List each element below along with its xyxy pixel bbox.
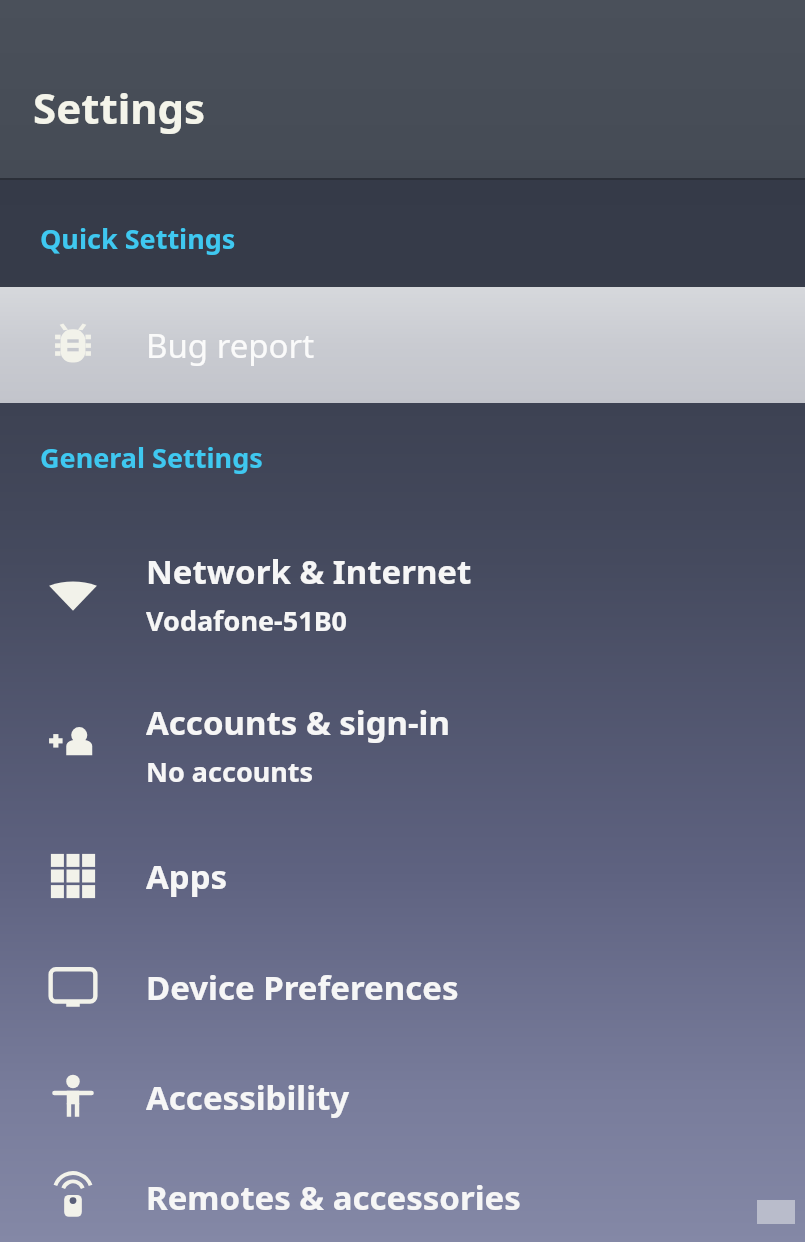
staticText: Accounts & sign-in [146, 700, 450, 745]
staticText: Settings [33, 79, 206, 136]
button[interactable]: Accessibility [0, 1042, 805, 1152]
staticText: No accounts [146, 753, 314, 790]
staticText: Quick Settings [40, 220, 236, 257]
button[interactable]: Accounts & sign-in [0, 670, 805, 820]
staticText: Vodafone-51B0 [146, 602, 348, 639]
staticText: Remotes & accessories [146, 1175, 521, 1220]
button[interactable]: Bug report [0, 287, 805, 403]
button[interactable]: Device Preferences [0, 932, 805, 1042]
staticText: Accessibility [146, 1075, 350, 1120]
staticText: Network & Internet [146, 549, 472, 594]
staticText: Bug report [146, 323, 315, 368]
staticText: Device Preferences [146, 965, 459, 1010]
staticText: Apps [146, 854, 228, 899]
button[interactable]: Network & Internet [0, 518, 805, 670]
staticText: General Settings [40, 439, 263, 476]
button[interactable]: Apps [0, 820, 805, 932]
button[interactable]: Remotes & accessories [0, 1152, 805, 1242]
